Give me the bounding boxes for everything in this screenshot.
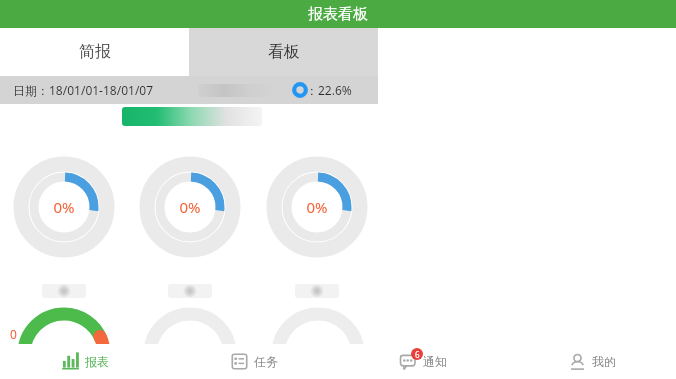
button[interactable]: 报表: [0, 344, 169, 379]
staticText: ：22.6%: [306, 82, 352, 98]
staticText: 报表看板: [308, 5, 368, 24]
staticText: 通知: [423, 354, 447, 369]
staticText: 6: [415, 349, 420, 360]
staticText: 0%: [53, 197, 75, 217]
staticText: 0%: [179, 197, 201, 217]
staticText: 简报: [79, 42, 111, 62]
button[interactable]: 看板: [189, 28, 378, 76]
staticText: 日期：18/01/01-18/01/07: [13, 82, 154, 98]
staticText: 看板: [268, 42, 300, 62]
button[interactable]: 我的: [507, 344, 676, 379]
staticText: 0%: [306, 197, 328, 217]
staticText: 任务: [254, 354, 278, 369]
staticText: 报表: [85, 354, 109, 369]
button[interactable]: 日期：18/01/01-18/01/07: [0, 76, 378, 104]
staticText: 我的: [592, 354, 616, 369]
button[interactable]: 简报: [0, 28, 189, 76]
button[interactable]: 任务: [169, 344, 338, 379]
staticText: 0: [10, 326, 17, 342]
button[interactable]: 6: [338, 344, 507, 379]
